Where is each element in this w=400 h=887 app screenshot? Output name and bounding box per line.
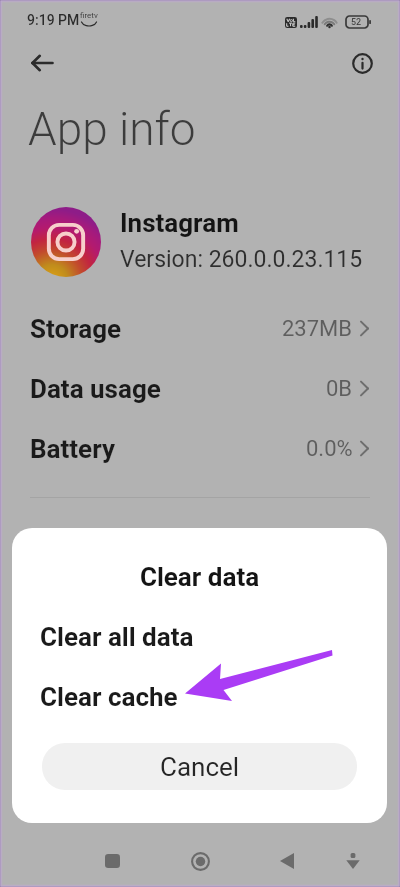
staticText: Clear data bbox=[12, 562, 387, 592]
button[interactable]: Recents bbox=[88, 837, 136, 885]
button[interactable]: Hide keyboard bbox=[329, 837, 377, 885]
button[interactable]: Home bbox=[176, 837, 224, 885]
button[interactable]: App details bbox=[340, 42, 383, 83]
staticText: Clear all data bbox=[40, 622, 194, 652]
staticText: Instagram bbox=[120, 208, 239, 238]
button[interactable]: Clear all data bbox=[12, 617, 387, 657]
staticText: Cancel bbox=[160, 752, 240, 782]
staticText: Clear cache bbox=[40, 682, 178, 712]
staticText: 0B bbox=[326, 376, 353, 402]
staticText: 237MB bbox=[282, 316, 353, 342]
staticText: firetv bbox=[80, 11, 98, 20]
button[interactable]: Battery bbox=[0, 419, 400, 479]
button[interactable]: Storage bbox=[0, 299, 400, 359]
staticText: 52 bbox=[351, 17, 362, 28]
staticText: Data usage bbox=[30, 374, 161, 404]
staticText: 0.0% bbox=[306, 436, 353, 462]
staticText: Battery bbox=[30, 434, 115, 464]
button[interactable]: Data usage bbox=[0, 359, 400, 419]
staticText: 9:19 PM bbox=[27, 12, 80, 28]
button[interactable]: Back bbox=[263, 837, 311, 885]
button[interactable]: Back bbox=[20, 52, 64, 74]
staticText: App info bbox=[28, 102, 196, 156]
button[interactable]: Clear cache bbox=[12, 677, 387, 717]
staticText: Version: 260.0.0.23.115 bbox=[120, 246, 363, 273]
staticText: Storage bbox=[30, 314, 122, 344]
button[interactable]: Cancel bbox=[42, 743, 357, 790]
